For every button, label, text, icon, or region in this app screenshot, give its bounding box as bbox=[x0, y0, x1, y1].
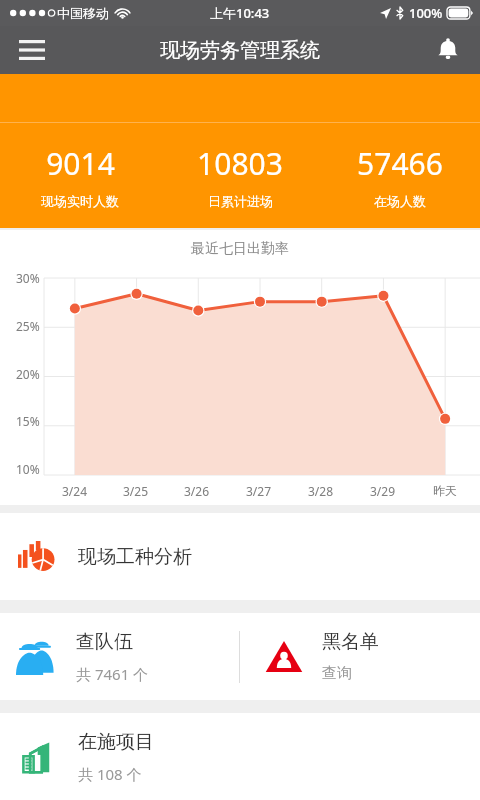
staticText: 25% bbox=[16, 318, 40, 332]
staticText: 3/29 bbox=[370, 483, 396, 499]
staticText: 10803 bbox=[197, 143, 283, 184]
staticText: 共 108 个 bbox=[78, 764, 142, 784]
staticText: 57466 bbox=[357, 143, 443, 184]
button[interactable]: 9014 bbox=[0, 123, 160, 228]
staticText: 查询 bbox=[322, 664, 352, 683]
staticText: 9014 bbox=[46, 143, 115, 184]
staticText: 上午10:43 bbox=[210, 4, 270, 22]
staticText: 3/28 bbox=[308, 483, 334, 499]
staticText: 100% bbox=[409, 4, 443, 22]
staticText: 3/26 bbox=[184, 483, 210, 499]
staticText: 3/24 bbox=[62, 483, 88, 499]
staticText: 中国移动 bbox=[57, 5, 109, 21]
staticText: 现场劳务管理系统 bbox=[160, 38, 320, 63]
button[interactable]: 在施项目 bbox=[0, 713, 480, 800]
staticText: 共 7461 个 bbox=[76, 664, 149, 684]
staticText: 在施项目 bbox=[78, 730, 154, 754]
staticText: 现场实时人数 bbox=[41, 193, 119, 209]
staticText: 30% bbox=[16, 270, 40, 284]
staticText: 3/25 bbox=[123, 483, 149, 499]
staticText: 日累计进场 bbox=[208, 193, 273, 209]
button[interactable]: Notifications bbox=[424, 26, 472, 74]
staticText: 10% bbox=[16, 461, 40, 475]
button[interactable]: 查队伍 bbox=[0, 613, 239, 700]
staticText: 黑名单 bbox=[322, 630, 379, 654]
button[interactable]: 57466 bbox=[320, 123, 480, 228]
button[interactable]: 10803 bbox=[160, 123, 320, 228]
staticText: 3/27 bbox=[246, 483, 272, 499]
staticText: 现场工种分析 bbox=[78, 545, 192, 569]
staticText: 20% bbox=[16, 366, 40, 380]
staticText: 昨天 bbox=[433, 483, 457, 498]
staticText: 最近七日出勤率 bbox=[0, 240, 480, 258]
button[interactable]: 现场工种分析 bbox=[0, 513, 480, 600]
staticText: 在场人数 bbox=[374, 193, 426, 209]
staticText: 15% bbox=[16, 413, 40, 427]
button[interactable]: 黑名单 bbox=[240, 613, 480, 700]
button[interactable]: Menu bbox=[8, 26, 56, 74]
staticText: 查队伍 bbox=[76, 630, 133, 654]
